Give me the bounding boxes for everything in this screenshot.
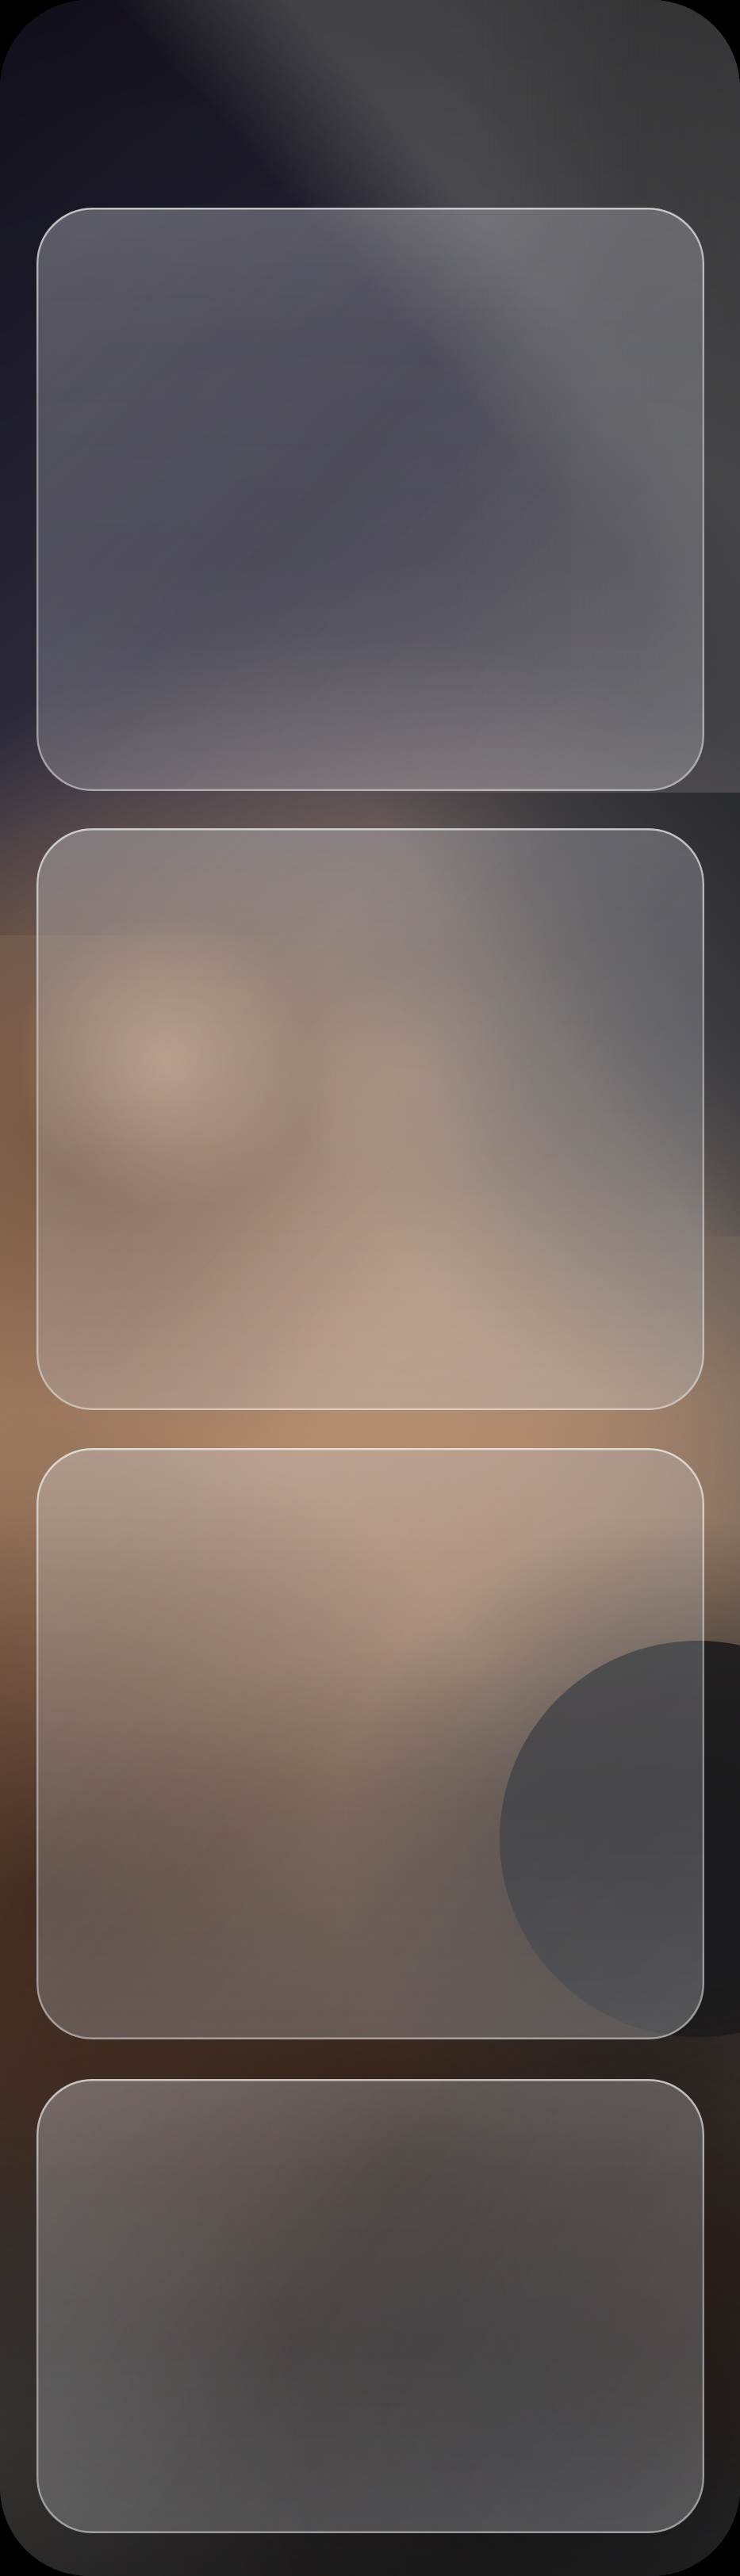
button[interactable]: Card three — [36, 1448, 704, 2039]
button[interactable]: Card one — [36, 208, 704, 791]
button[interactable]: Card two — [36, 828, 704, 1410]
button[interactable]: Card four — [36, 2079, 704, 2533]
